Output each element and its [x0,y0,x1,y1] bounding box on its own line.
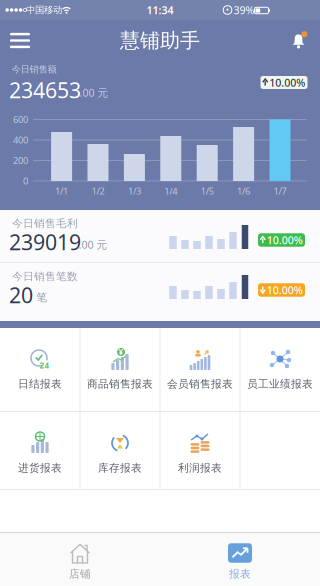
staticText: 日结报表 [18,377,62,390]
staticText: 200 [13,154,28,167]
staticText: 1/3 [128,185,141,197]
staticText: .00 元 [79,85,108,100]
staticText: 10.00% [267,283,303,297]
staticText: 今日销售笔数 [12,270,78,283]
staticText: 11:34 [146,3,173,17]
staticText: 笔 [36,291,47,304]
staticText: 进货报表 [18,461,62,474]
staticText: 600 [13,113,28,126]
staticText: 报表 [229,567,251,580]
button[interactable]: ¥ [80,328,160,411]
button[interactable]: 24 [0,328,80,411]
staticText: 店铺 [69,567,91,580]
staticText: 39% [233,3,254,17]
staticText: 1/1 [55,185,68,197]
staticText: 会员销售报表 [167,377,233,390]
button[interactable]: 会员销售报表 [160,328,240,411]
staticText: 20 [9,281,33,309]
staticText: 239019 [9,228,81,256]
staticText: 商品销售报表 [87,377,153,390]
button[interactable]: 利润报表 [160,412,240,489]
staticText: ¥ [118,347,123,357]
staticText: 1/2 [91,185,104,197]
button[interactable]: Notifications [290,30,310,52]
button[interactable]: 报表 [160,533,320,586]
staticText: 今日销售额 [11,64,56,75]
button[interactable]: 员工业绩报表 [240,328,320,411]
staticText: 400 [13,134,28,146]
staticText: 慧铺助手 [120,28,200,53]
staticText: 24 [39,360,49,371]
staticText: 1/6 [237,185,250,197]
button[interactable]: 店铺 [0,533,160,586]
staticText: 1/7 [273,185,286,197]
staticText: 利润报表 [178,461,222,474]
staticText: 中国移动 [26,4,62,16]
staticText: 234653 [9,76,81,104]
staticText: 库存报表 [98,461,142,474]
staticText: 10.00% [269,75,305,90]
staticText: .00 元 [78,237,107,252]
staticText: 0 [23,175,28,187]
staticText: 1/4 [164,185,177,197]
button[interactable]: 进货报表 [0,412,80,489]
button[interactable]: Menu [2,22,38,58]
staticText: 10.00% [267,233,303,247]
button[interactable]: 库存报表 [80,412,160,489]
staticText: 今日销售毛利 [12,217,78,230]
staticText: 1/5 [201,185,214,197]
staticText: 员工业绩报表 [247,377,313,390]
